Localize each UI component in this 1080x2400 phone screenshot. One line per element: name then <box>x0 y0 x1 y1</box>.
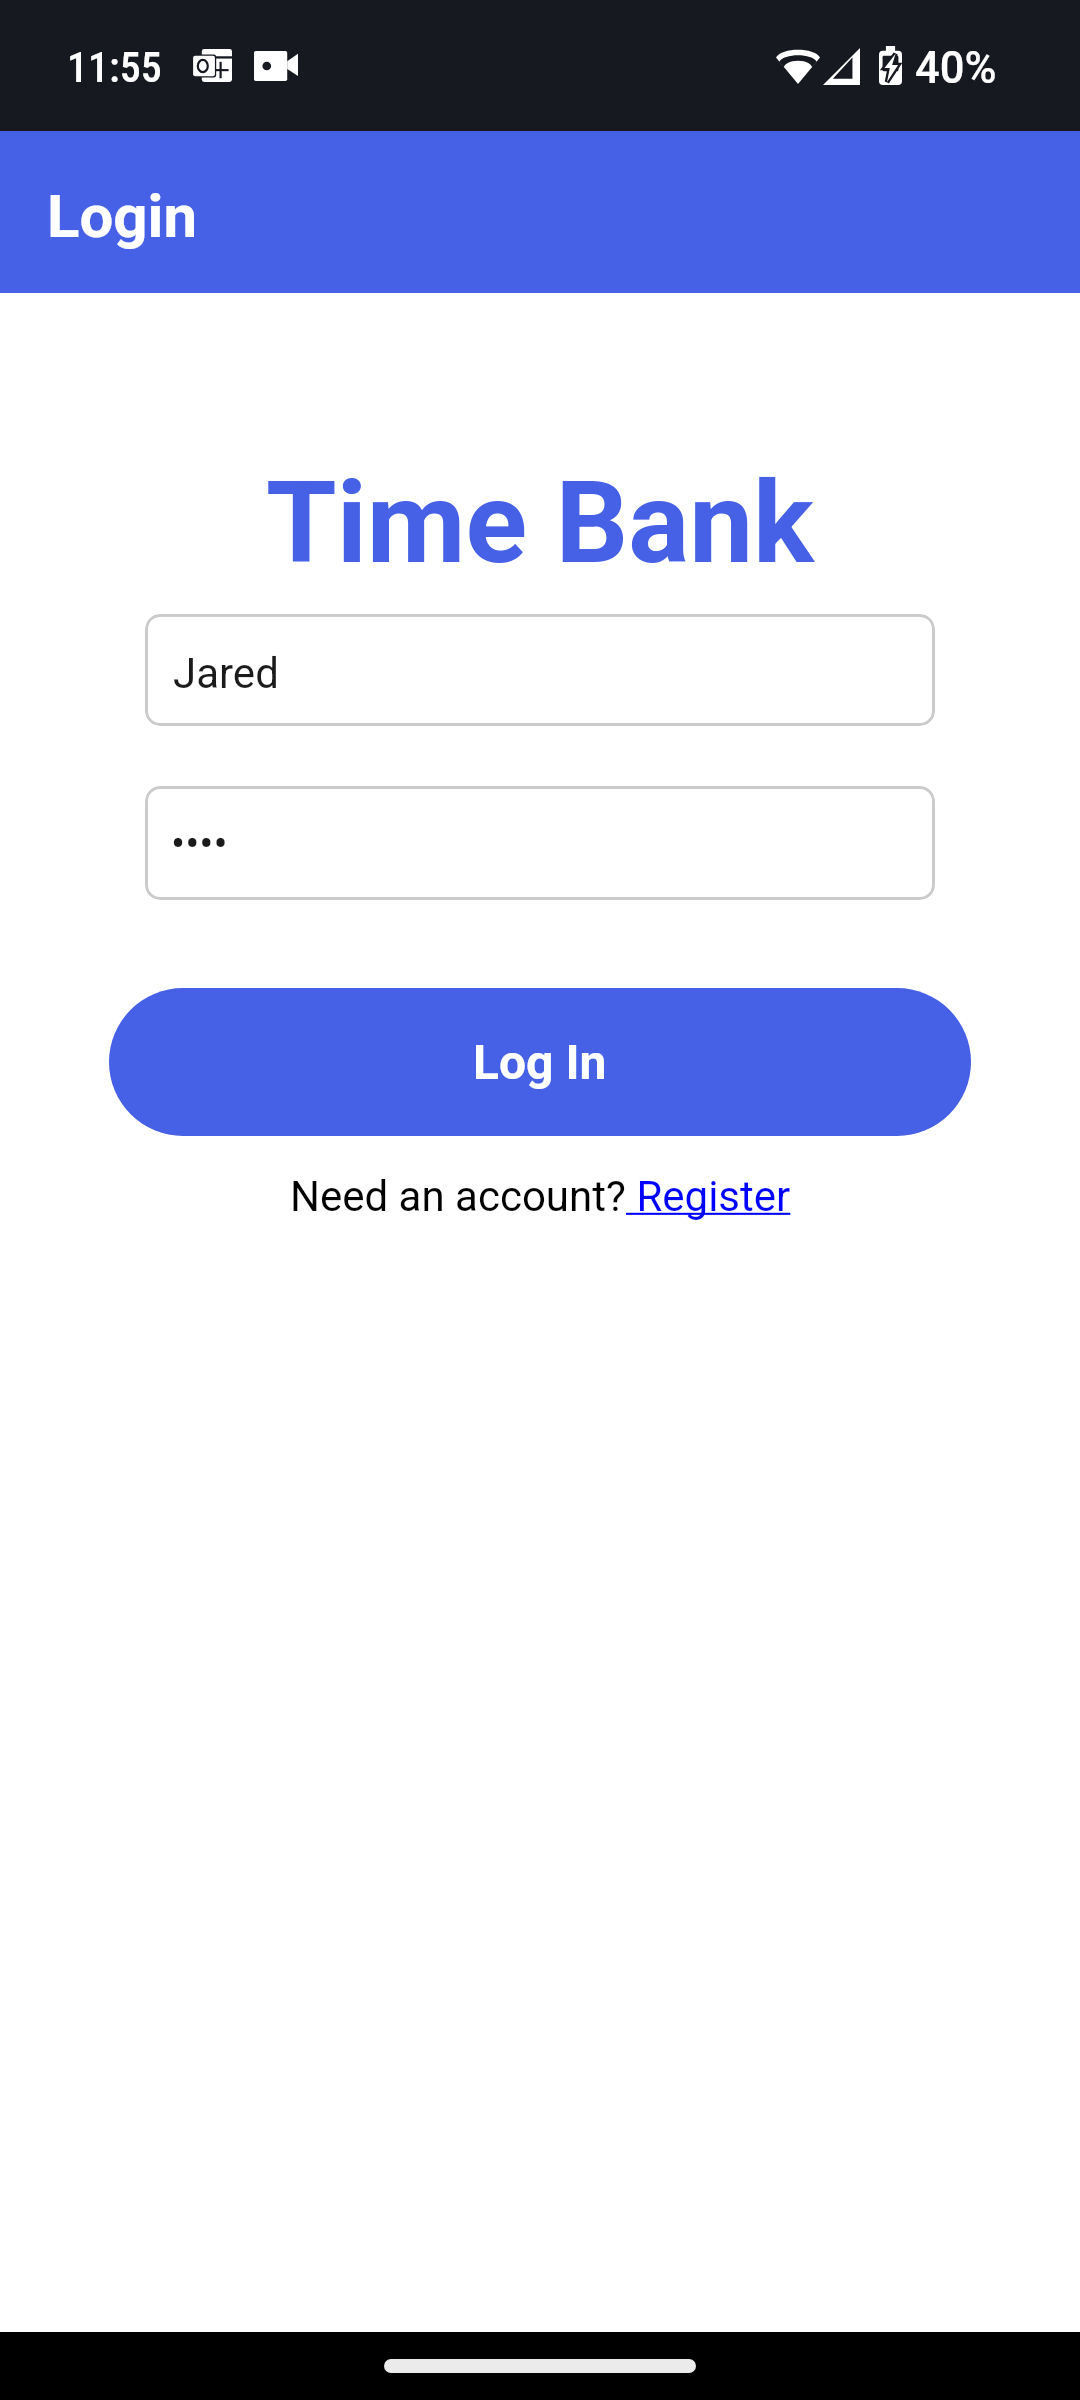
staticText: 40% <box>915 43 997 94</box>
staticText: Log In <box>473 1034 607 1090</box>
button[interactable]: Register <box>626 1172 791 1221</box>
button[interactable]: Username <box>145 614 935 726</box>
staticText: Login <box>47 181 198 251</box>
button[interactable]: Password <box>145 786 935 900</box>
button[interactable]: Log In <box>109 988 971 1136</box>
staticText: 11:55 <box>67 43 162 92</box>
staticText: Time Bank <box>0 456 1080 590</box>
staticText: Need an account? <box>290 1172 626 1221</box>
staticText: •••• <box>171 819 228 868</box>
other: Home <box>384 2359 696 2373</box>
staticText: Jared <box>173 649 279 698</box>
staticText: Register <box>626 1172 791 1221</box>
